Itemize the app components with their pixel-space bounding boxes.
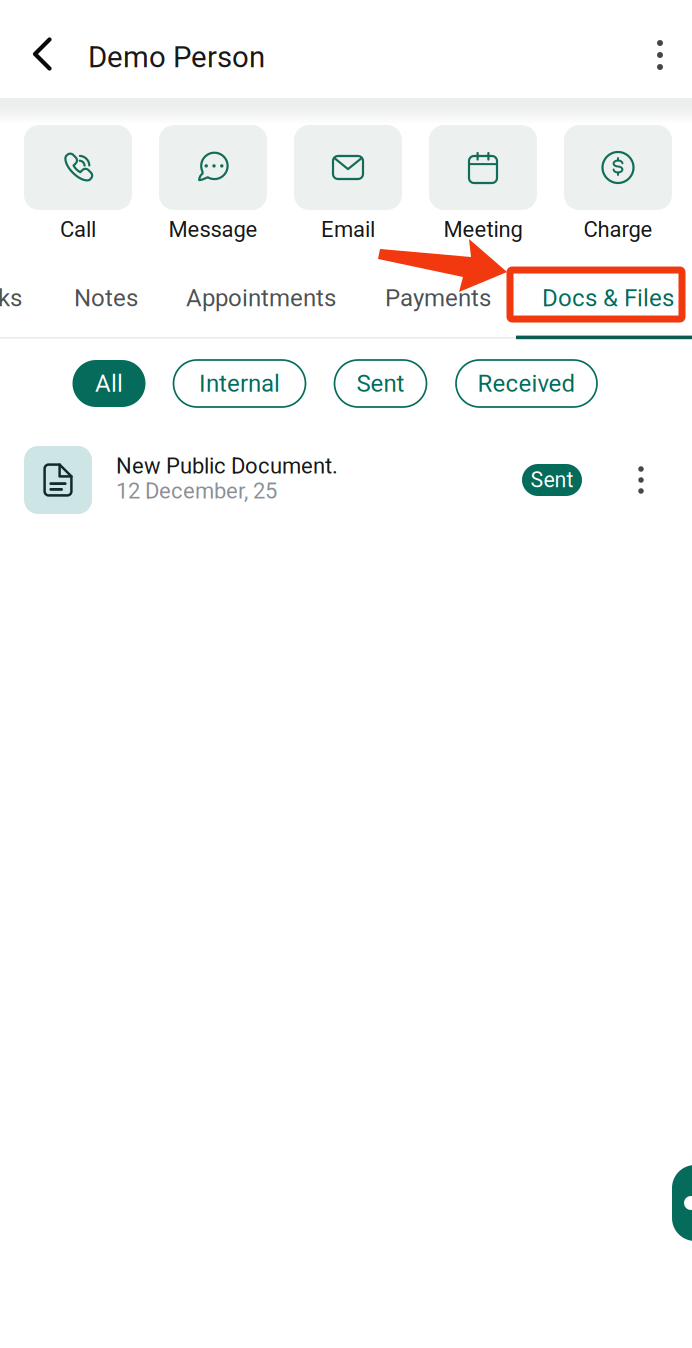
button[interactable]: Charge (564, 125, 672, 249)
staticText: Call (60, 217, 96, 242)
staticText: Docs & Files (542, 284, 674, 312)
button[interactable]: More options (636, 31, 684, 79)
staticText: Tasks (0, 284, 22, 312)
staticText: Sent (356, 369, 404, 397)
staticText: Meeting (443, 217, 522, 242)
staticText: Internal (199, 369, 280, 397)
staticText: Received (477, 369, 575, 397)
staticText: Email (321, 217, 375, 242)
button[interactable]: Docs & Files (542, 274, 674, 322)
button[interactable]: Back (25, 34, 73, 74)
staticText: Charge (583, 217, 652, 242)
staticText: Appointments (186, 284, 336, 312)
button[interactable]: Sent (334, 360, 426, 407)
button[interactable]: Tasks (0, 274, 22, 322)
staticText: New Public Document. (116, 453, 338, 479)
button[interactable]: New Public Document. (0, 435, 692, 525)
button[interactable]: Received (456, 360, 597, 407)
staticText: Notes (74, 284, 138, 312)
button[interactable]: Document options (617, 456, 665, 504)
button[interactable]: Internal (173, 360, 305, 407)
button[interactable]: Appointments (186, 274, 336, 322)
staticText: 12 December, 25 (116, 478, 277, 504)
button[interactable]: Call (24, 125, 132, 249)
button[interactable]: Payments (385, 274, 491, 322)
staticText: Message (168, 217, 257, 242)
staticText: Sent (530, 467, 573, 492)
button[interactable]: Notes (74, 274, 138, 322)
button[interactable]: Message (159, 125, 267, 249)
staticText: Payments (385, 284, 491, 312)
button[interactable]: Add document (672, 1165, 692, 1241)
button[interactable]: Meeting (429, 125, 537, 249)
button[interactable]: All (72, 360, 145, 407)
button[interactable]: Email (294, 125, 402, 249)
staticText: Demo Person (88, 40, 265, 74)
staticText: All (95, 369, 123, 397)
